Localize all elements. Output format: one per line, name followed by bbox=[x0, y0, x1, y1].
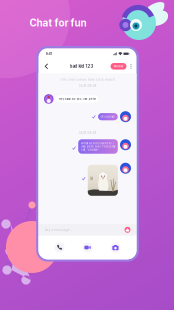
button[interactable]: Back bbox=[40, 61, 52, 72]
staticText: Chat for fun bbox=[29, 17, 86, 29]
button[interactable]: Voice call bbox=[52, 240, 66, 254]
staticText: 9:41 bbox=[45, 52, 51, 56]
staticText: Hey Sara! Do you like pets? bbox=[59, 97, 96, 100]
staticText: Of course! bbox=[100, 115, 115, 118]
staticText: 04/12 09:38 bbox=[78, 84, 96, 88]
button[interactable]: Video call bbox=[80, 240, 94, 254]
button[interactable]: More options bbox=[126, 61, 135, 72]
staticText: What a coincidence! I like pets, too! Th… bbox=[81, 142, 115, 151]
button[interactable]: Say a message... bbox=[38, 224, 136, 236]
staticText: This chat comes from click match bbox=[60, 78, 115, 81]
button[interactable]: Follow bbox=[110, 63, 126, 70]
staticText: 04/12 09:38 bbox=[78, 131, 96, 135]
staticText: Follow bbox=[114, 65, 123, 68]
staticText: Say a message... bbox=[44, 228, 72, 232]
button[interactable]: Camera bbox=[108, 240, 122, 254]
staticText: bad kid 123 bbox=[69, 64, 93, 69]
